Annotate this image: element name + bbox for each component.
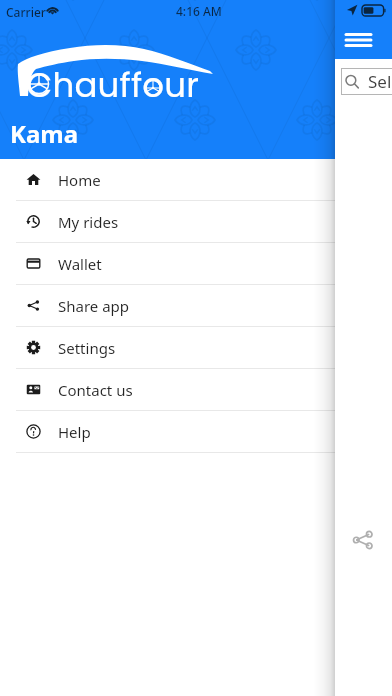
button[interactable]: Home xyxy=(0,159,335,200)
button[interactable]: Share xyxy=(351,528,375,552)
staticText: Chauffour xyxy=(26,61,200,109)
button[interactable]: Contact us xyxy=(0,369,335,410)
staticText: Help xyxy=(58,422,91,442)
staticText: Contact us xyxy=(58,380,133,400)
staticText: 4:16 AM xyxy=(176,3,222,19)
button[interactable]: Settings xyxy=(0,327,335,368)
button[interactable]: Select xyxy=(341,68,392,95)
staticText: Settings xyxy=(58,338,116,358)
staticText: Share app xyxy=(58,296,130,316)
button[interactable]: Wallet xyxy=(0,243,335,284)
button[interactable]: Help xyxy=(0,411,335,452)
button[interactable]: Share app xyxy=(0,285,335,326)
button[interactable]: My rides xyxy=(0,201,335,242)
staticText: Kama xyxy=(10,117,79,150)
staticText: Home xyxy=(58,170,101,190)
staticText: Carrier xyxy=(6,4,46,20)
staticText: Wallet xyxy=(58,254,102,274)
button[interactable]: Open navigation menu xyxy=(338,24,378,56)
staticText: My rides xyxy=(58,212,119,232)
staticText: Select xyxy=(368,70,392,93)
